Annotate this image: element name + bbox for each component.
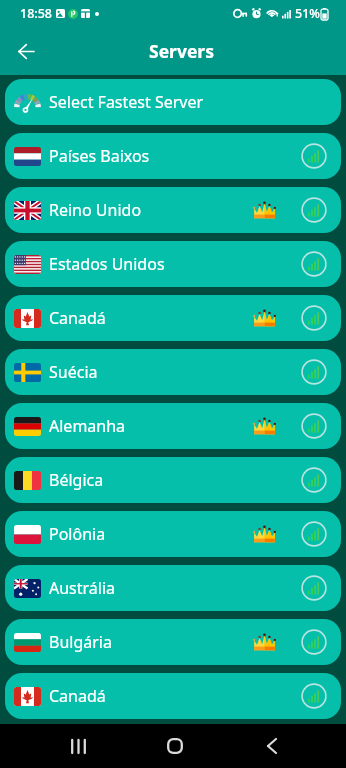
button[interactable]: Alemanha — [5, 403, 341, 449]
staticText: Bélgica — [49, 469, 104, 491]
button[interactable]: Back — [6, 31, 46, 71]
staticText: Suécia — [49, 361, 98, 383]
staticText: Alemanha — [49, 415, 126, 437]
button[interactable]: Select Fastest Server — [5, 79, 341, 125]
button[interactable]: Polônia — [5, 511, 341, 557]
staticText: Estados Unidos — [49, 253, 165, 275]
button[interactable]: Canadá — [5, 673, 341, 719]
button[interactable]: Reino Unido — [5, 187, 341, 233]
staticText: 51% — [295, 5, 320, 22]
button[interactable]: Recent apps — [54, 724, 102, 768]
button[interactable]: Bélgica — [5, 457, 341, 503]
staticText: Servers — [149, 39, 214, 63]
staticText: Países Baixos — [49, 145, 150, 167]
button[interactable]: Países Baixos — [5, 133, 341, 179]
button[interactable]: Estados Unidos — [5, 241, 341, 287]
staticText: Canadá — [49, 685, 106, 707]
button[interactable]: Back — [248, 724, 296, 768]
staticText: Bulgária — [49, 631, 112, 653]
button[interactable]: Bulgária — [5, 619, 341, 665]
staticText: Reino Unido — [49, 199, 142, 221]
button[interactable]: Home — [151, 724, 199, 768]
staticText: Austrália — [49, 577, 116, 599]
staticText: Select Fastest Server — [49, 91, 204, 113]
staticText: 18:58 — [20, 5, 53, 22]
button[interactable]: Canadá — [5, 295, 341, 341]
button[interactable]: Suécia — [5, 349, 341, 395]
button[interactable]: Austrália — [5, 565, 341, 611]
staticText: Canadá — [49, 307, 106, 329]
staticText: Polônia — [49, 523, 106, 545]
